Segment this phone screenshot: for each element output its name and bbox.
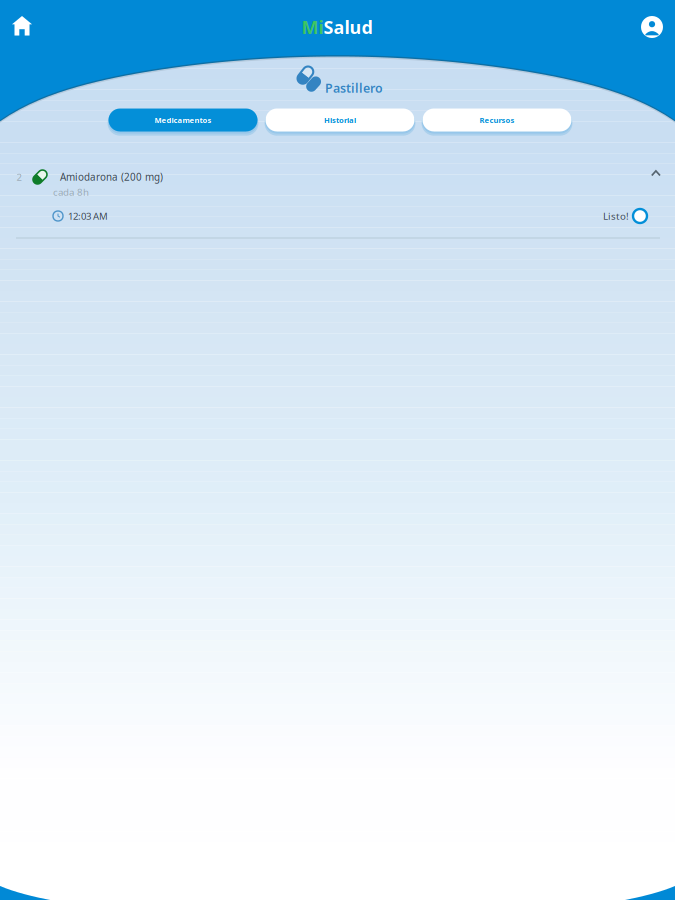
button[interactable]: Amiodarona (200 mg), cada 8h [0, 162, 675, 202]
staticText: cada 8h [53, 185, 89, 199]
staticText: Salud [323, 15, 372, 39]
staticText: Medicamentos [154, 115, 211, 125]
staticText: 12:03 AM [68, 209, 108, 223]
button[interactable]: Marcar como tomado a las 12:03 AM [600, 205, 650, 227]
staticText: Historial [324, 115, 356, 125]
staticText: Listo! [603, 209, 629, 223]
staticText: 2 [16, 170, 21, 184]
button[interactable]: Cuenta [630, 5, 674, 49]
button[interactable]: Inicio [0, 4, 44, 48]
staticText: Amiodarona (200 mg) [60, 170, 163, 184]
staticText: Recursos [479, 115, 514, 125]
button[interactable]: Medicamentos [107, 106, 259, 134]
button[interactable]: Historial [264, 106, 416, 134]
staticText: Pastillero [325, 80, 383, 96]
button[interactable]: Recursos [421, 106, 573, 134]
staticText: Mi [301, 15, 323, 39]
